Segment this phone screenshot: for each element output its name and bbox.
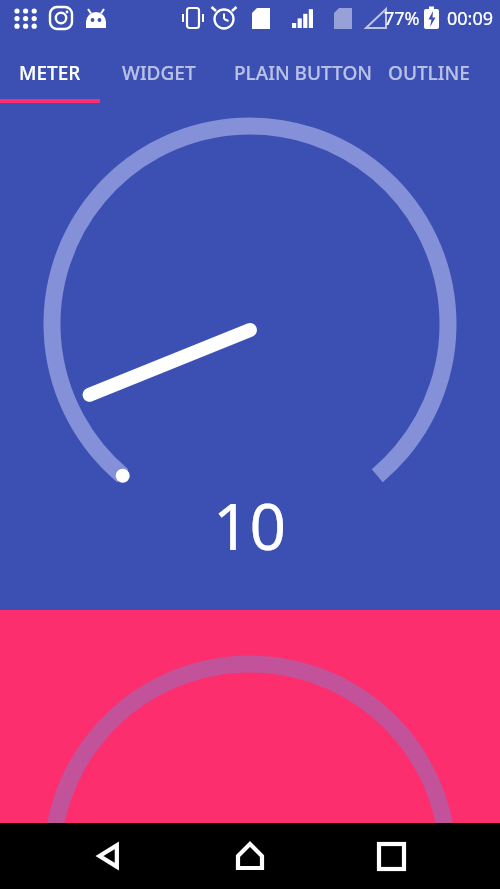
staticText: 10 [213, 482, 287, 569]
button[interactable]: PLAIN BUTTON [218, 36, 388, 110]
button[interactable]: WIDGET [100, 36, 218, 110]
staticText: WIDGET [122, 60, 196, 86]
button[interactable]: OUTLINE BUTTON [388, 36, 500, 110]
button[interactable]: Recents [359, 824, 423, 888]
staticText: 00:09 [447, 6, 494, 31]
button[interactable]: Back [77, 824, 141, 888]
button[interactable]: 10 [0, 110, 500, 610]
staticText: METER [19, 60, 81, 86]
staticText: OUTLINE BUTTON [388, 60, 500, 86]
button[interactable] [0, 610, 500, 823]
button[interactable]: Home [218, 824, 282, 888]
staticText: 77% [384, 6, 420, 31]
button[interactable]: METER [0, 36, 100, 110]
staticText: PLAIN BUTTON [234, 60, 373, 86]
